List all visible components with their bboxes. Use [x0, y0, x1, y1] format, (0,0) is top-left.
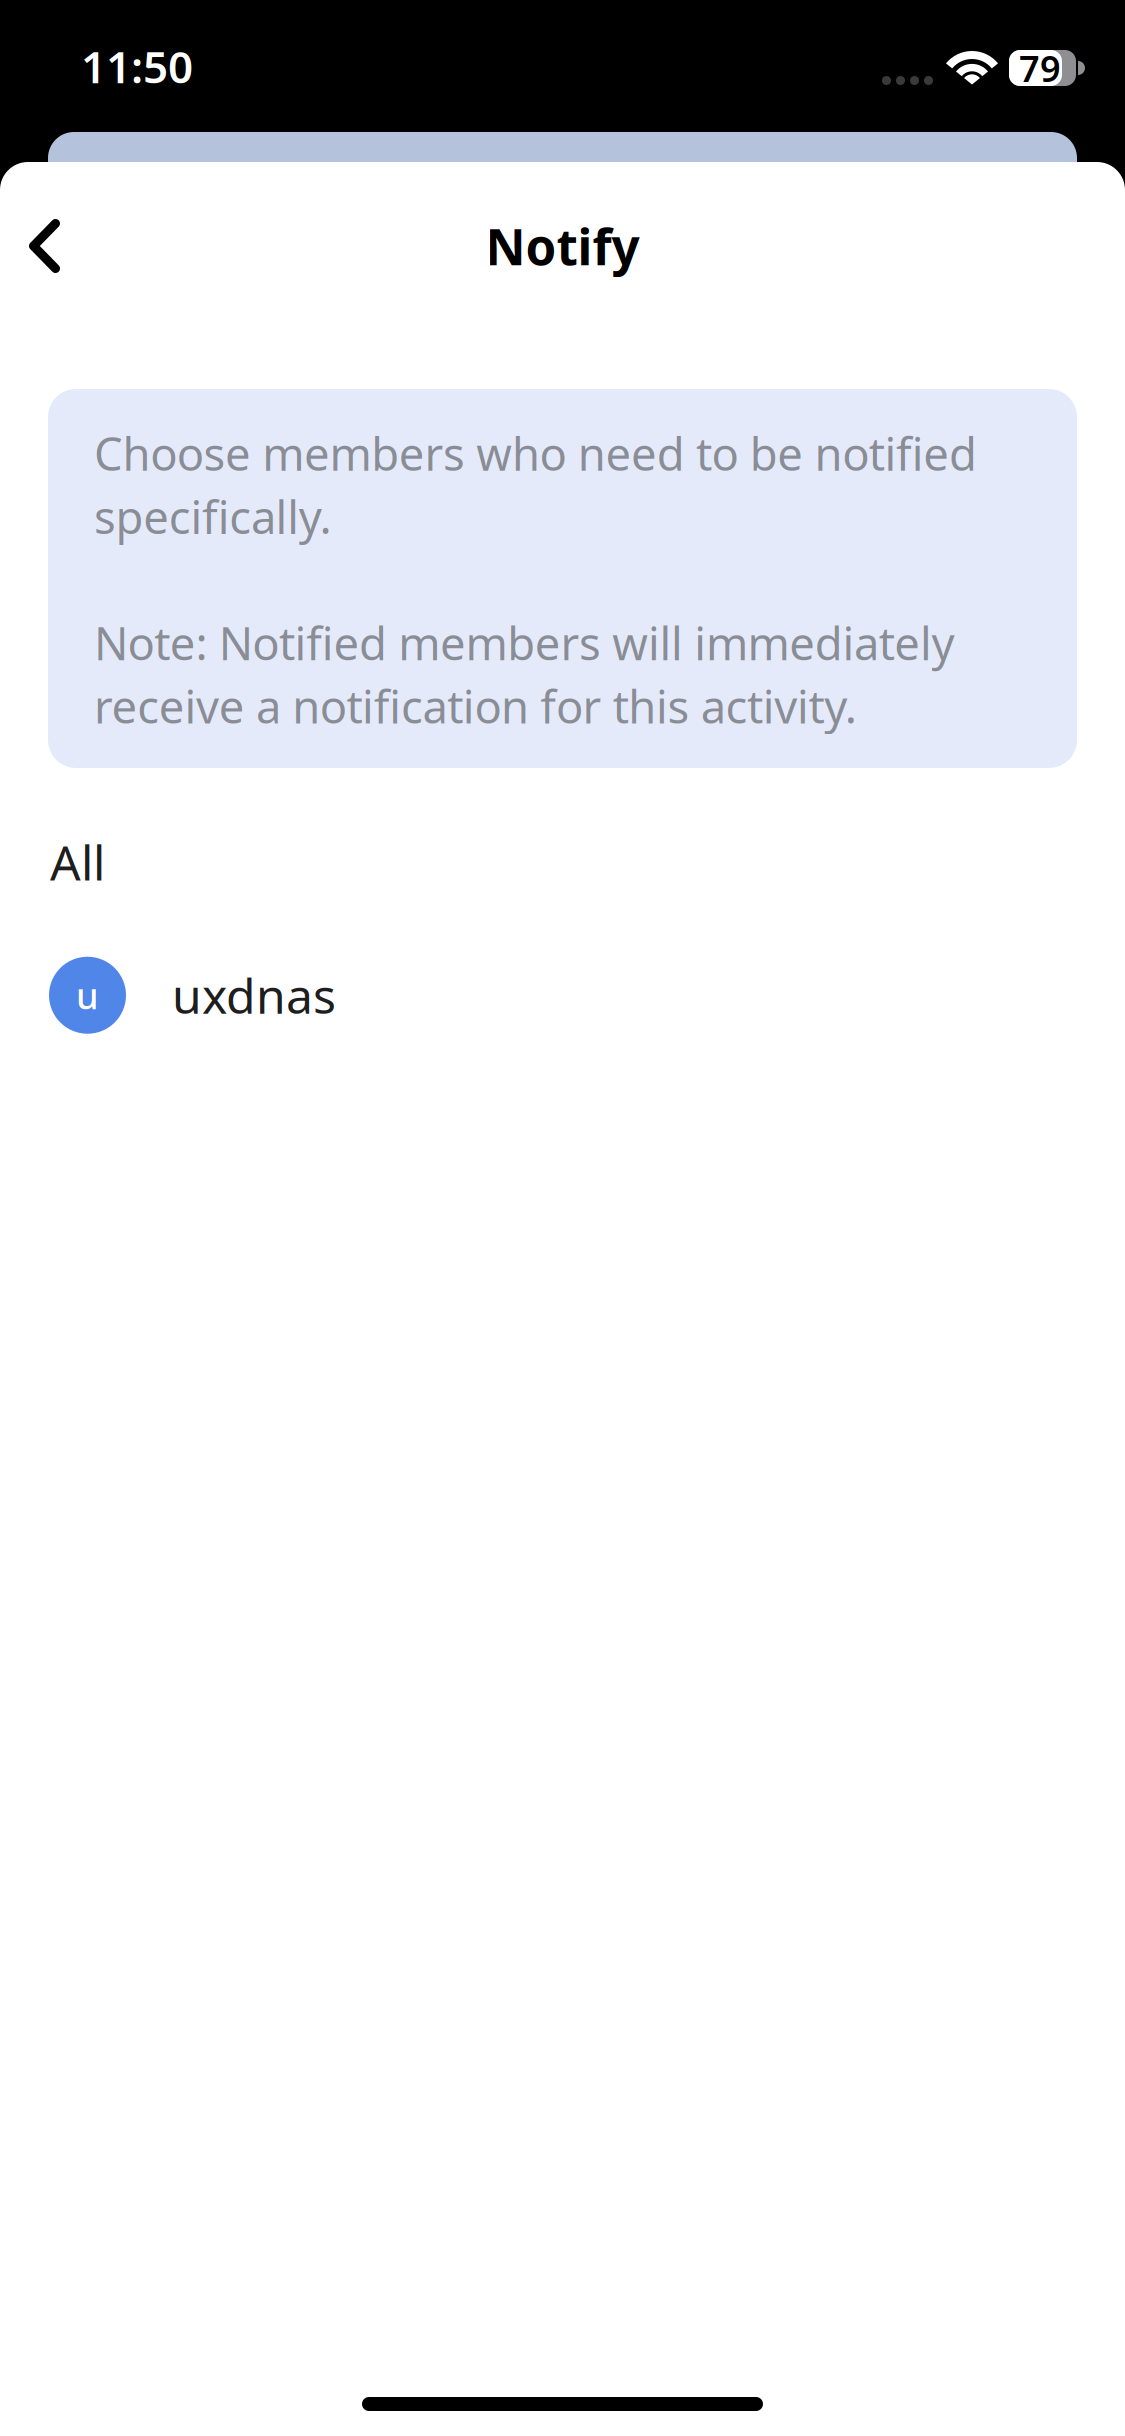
staticText: 79	[1019, 44, 1061, 92]
staticText: All	[50, 830, 105, 894]
button[interactable]: u	[0, 944, 1125, 1047]
staticText: uxdnas	[172, 963, 336, 1027]
staticText: u	[76, 971, 99, 1019]
staticText: Choose members who need to be notified s…	[94, 423, 977, 736]
staticText: 11:50	[81, 37, 193, 95]
button[interactable]: Back	[0, 197, 90, 295]
staticText: Notify	[485, 213, 639, 279]
